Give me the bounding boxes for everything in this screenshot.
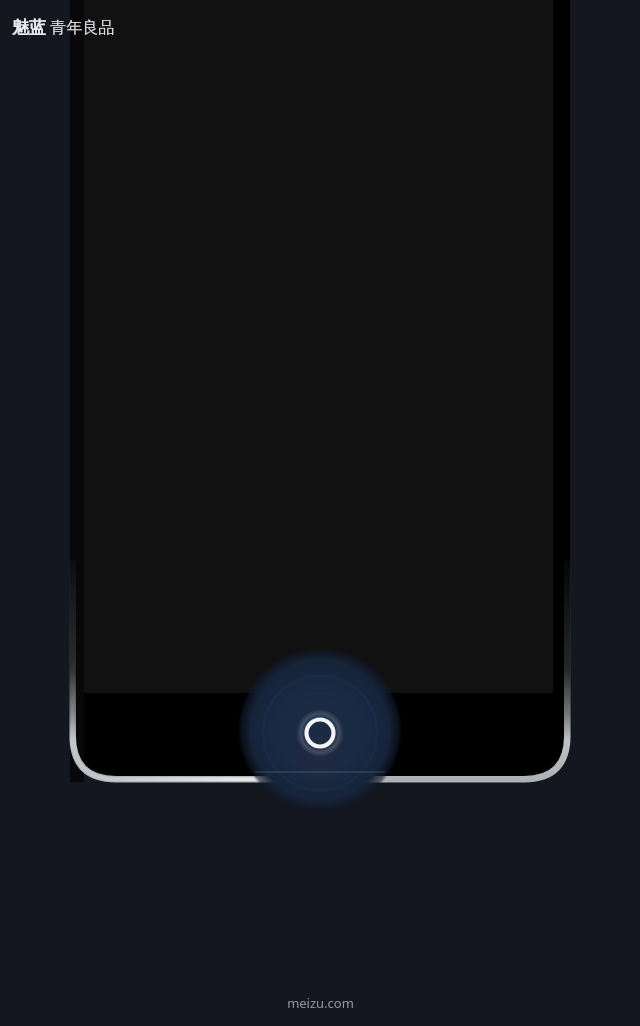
button[interactable]: meizu.com bbox=[287, 994, 354, 1012]
staticText: 魅蓝 bbox=[12, 17, 46, 38]
staticText: 青年良品 bbox=[46, 16, 115, 38]
button[interactable]: Meizu Blue Charm brand bbox=[12, 16, 115, 38]
